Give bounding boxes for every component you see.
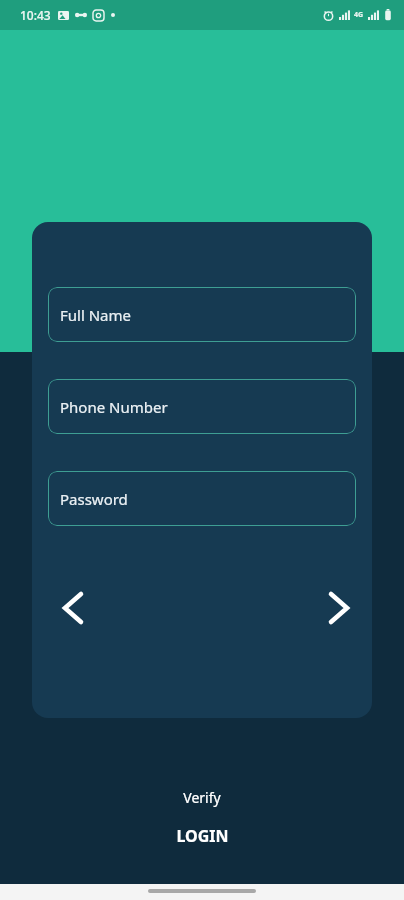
button[interactable]: Full Name	[48, 287, 356, 342]
button[interactable]: Verify	[171, 786, 233, 809]
staticText: 10:43	[20, 7, 51, 23]
staticText: LOGIN	[176, 825, 229, 847]
button[interactable]: LOGIN	[164, 823, 241, 849]
staticText: Password	[60, 489, 128, 509]
button[interactable]: Next	[315, 584, 363, 632]
staticText: Verify	[183, 788, 221, 807]
button[interactable]: Previous	[49, 584, 97, 632]
staticText: 4G	[354, 10, 364, 20]
button[interactable]: Phone Number	[48, 379, 356, 434]
button[interactable]: Password	[48, 471, 356, 526]
staticText: Phone Number	[60, 397, 168, 417]
staticText: Full Name	[60, 305, 131, 325]
